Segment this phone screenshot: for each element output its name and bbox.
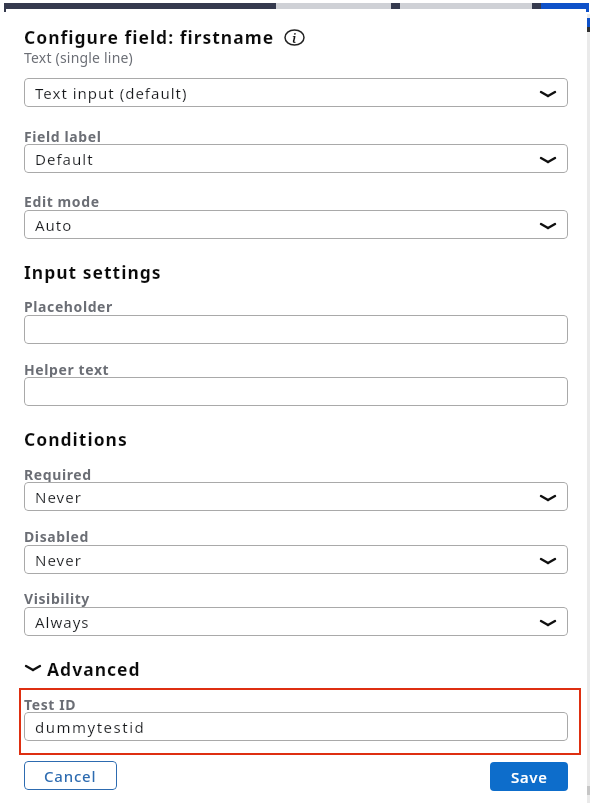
- button[interactable]: Default: [24, 144, 568, 173]
- staticText: Edit mode: [24, 192, 100, 211]
- staticText: dummytestid: [35, 717, 146, 737]
- staticText: Required: [24, 465, 92, 484]
- button[interactable]: Save: [490, 762, 568, 791]
- button[interactable]: [24, 315, 568, 344]
- staticText: Field label: [24, 127, 102, 146]
- staticText: Text (single line): [24, 48, 134, 67]
- staticText: Placeholder: [24, 297, 113, 316]
- button[interactable]: Never: [24, 545, 568, 574]
- staticText: i: [292, 30, 297, 46]
- button[interactable]: Cancel: [24, 761, 117, 790]
- button[interactable]: Advanced: [24, 657, 141, 681]
- button[interactable]: Always: [24, 607, 568, 636]
- staticText: Disabled: [24, 527, 89, 546]
- staticText: Input settings: [24, 260, 162, 284]
- button[interactable]: dummytestid: [24, 712, 568, 741]
- staticText: Helper text: [24, 360, 110, 379]
- staticText: Never: [35, 487, 82, 507]
- staticText: Configure field: firstname: [24, 25, 275, 49]
- button[interactable]: Never: [24, 482, 568, 511]
- staticText: Default: [35, 149, 94, 169]
- button[interactable]: Auto: [24, 210, 568, 239]
- button[interactable]: Info: [284, 29, 305, 46]
- button[interactable]: [24, 377, 568, 406]
- staticText: Always: [35, 612, 90, 632]
- button[interactable]: Text input (default): [24, 78, 568, 107]
- staticText: Never: [35, 550, 82, 570]
- staticText: Test ID: [24, 695, 77, 714]
- staticText: Save: [511, 767, 548, 787]
- staticText: Cancel: [44, 766, 97, 786]
- staticText: Conditions: [24, 427, 128, 451]
- staticText: Text input (default): [35, 83, 188, 103]
- staticText: Advanced: [47, 657, 141, 681]
- staticText: Auto: [35, 215, 73, 235]
- staticText: Visibility: [24, 589, 90, 608]
